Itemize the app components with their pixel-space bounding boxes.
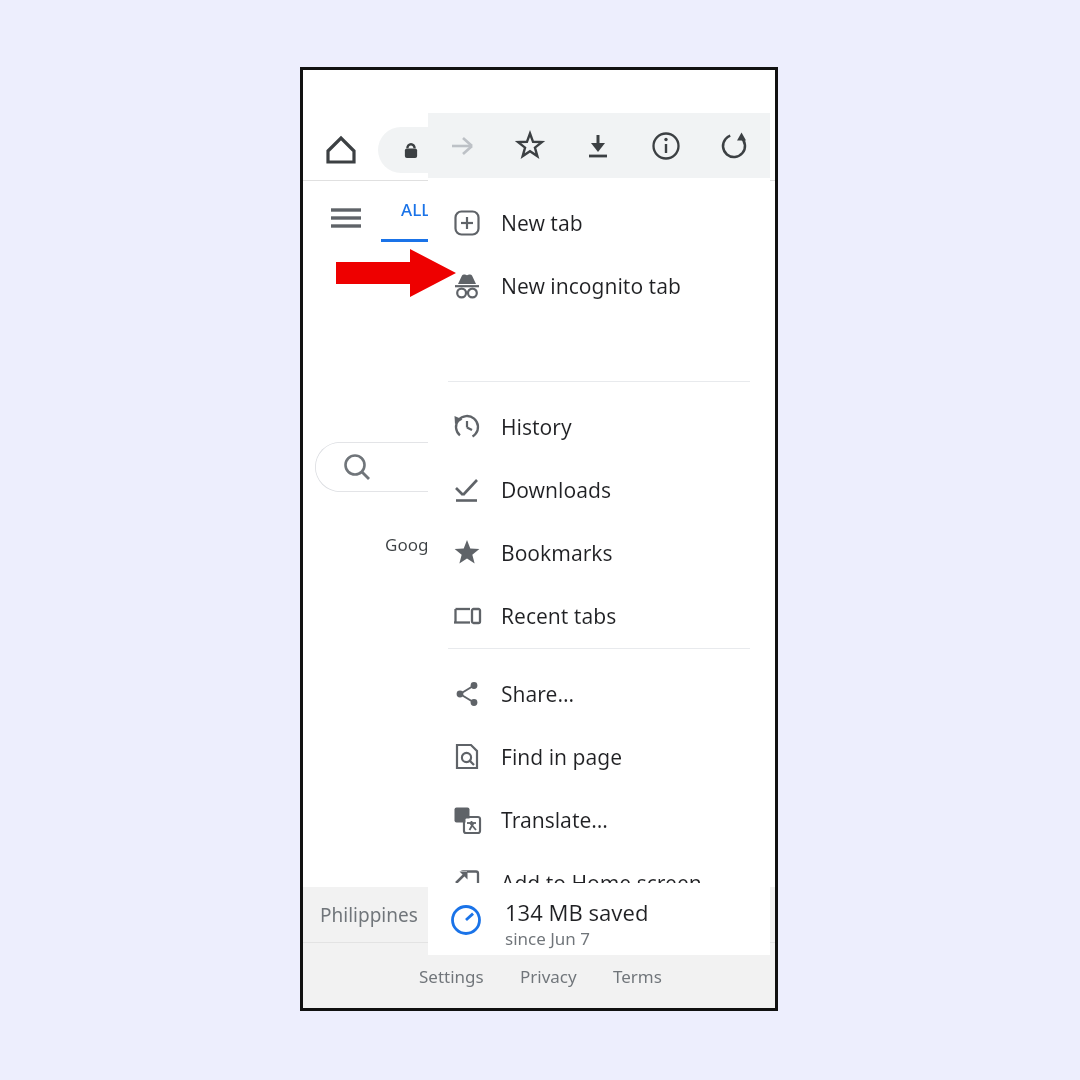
button[interactable]: New tab [428,195,770,251]
button[interactable]: Bookmark [508,124,552,168]
button[interactable]: History [428,399,770,455]
button[interactable]: New incognito tab [428,258,770,314]
staticText: 134 MB saved [505,897,649,927]
staticText: Google [385,533,443,556]
button[interactable]: Recent tabs [428,588,770,644]
staticText: google.com [432,138,527,161]
button[interactable]: Home [319,128,363,172]
button[interactable]: Privacy [520,965,577,988]
staticText: New tab [501,209,583,238]
button[interactable]: Share… [428,666,770,722]
staticText: since Jun 7 [505,927,590,950]
staticText: Add to Home screen [501,869,702,898]
button[interactable]: Terms [613,965,662,988]
button[interactable]: Find in page [428,729,770,785]
staticText: Privacy [520,965,577,988]
button[interactable]: Download [576,124,620,168]
staticText: Translate… [501,806,608,835]
button[interactable]: Settings [419,965,484,988]
button[interactable]: Menu [325,198,367,234]
staticText: History [501,413,572,442]
button[interactable]: 134 MB saved [428,883,770,955]
staticText: Find in page [501,743,622,772]
staticText: Terms [613,965,662,988]
staticText: Downloads [501,476,611,505]
button[interactable]: google.com [378,127,708,173]
staticText: New incognito tab [501,272,681,301]
staticText: ALL [401,198,431,221]
staticText: Recent tabs [501,602,617,631]
button[interactable]: Page info [644,124,688,168]
button[interactable]: Reload [712,124,756,168]
staticText: Bookmarks [501,539,613,568]
staticText: Philippines [320,902,418,928]
button[interactable]: Add to Home screen [428,855,770,911]
button[interactable] [315,442,635,492]
staticText: Settings [419,965,484,988]
button[interactable]: Downloads [428,462,770,518]
staticText: Share… [501,680,574,709]
staticText: Request desktop site [499,916,685,942]
button[interactable]: Translate… [428,792,770,848]
button[interactable]: Bookmarks [428,525,770,581]
button[interactable]: ALL [381,188,451,242]
button[interactable]: Forward [440,124,484,168]
